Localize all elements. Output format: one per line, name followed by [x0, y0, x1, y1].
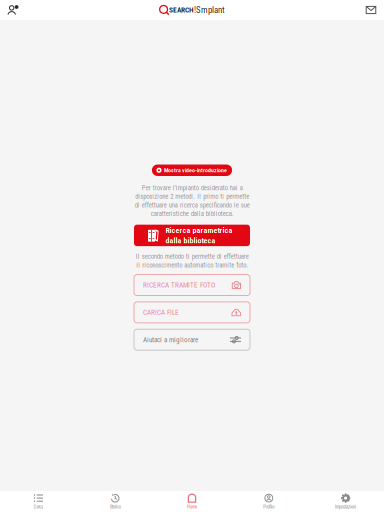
- staticText: Ricerca parametrica dalla biblioteca: [166, 225, 233, 245]
- staticText: !: [194, 5, 196, 15]
- staticText: Profilo: [263, 504, 274, 509]
- button[interactable]: CARICA FILE: [134, 302, 250, 323]
- button[interactable]: Aiutaci a migliorare: [134, 329, 250, 350]
- staticText: CARICA FILE: [143, 308, 179, 317]
- button[interactable]: Impostazioni: [307, 490, 384, 512]
- staticText: Mostra video-introduzione: [164, 167, 227, 174]
- button[interactable]: Home: [154, 490, 230, 512]
- button[interactable]: Account: [0, 0, 26, 20]
- staticText: Aiutaci a migliorare: [143, 335, 198, 344]
- staticText: Home: [187, 504, 197, 509]
- button[interactable]: Profilo: [230, 490, 307, 512]
- staticText: RICERCA TRAMITE FOTO: [143, 281, 215, 289]
- staticText: Il secondo metodo ti permette di effettu…: [135, 253, 248, 269]
- staticText: Storico: [110, 504, 121, 509]
- staticText: Smplant: [196, 5, 225, 15]
- button[interactable]: Cerca: [0, 490, 77, 512]
- staticText: SEARCH: [169, 6, 194, 14]
- button[interactable]: RICERCA TRAMITE FOTO: [134, 275, 250, 296]
- staticText: Per trovare l'impianto desiderato hai a …: [134, 184, 249, 218]
- staticText: Cerca: [33, 504, 43, 509]
- button[interactable]: Ricerca parametrica dalla biblioteca: [134, 225, 250, 246]
- staticText: Impostazioni: [335, 504, 356, 509]
- button[interactable]: Messaggi: [358, 0, 384, 20]
- button[interactable]: Storico: [77, 490, 154, 512]
- button[interactable]: Mostra video-introduzione: [152, 164, 232, 176]
